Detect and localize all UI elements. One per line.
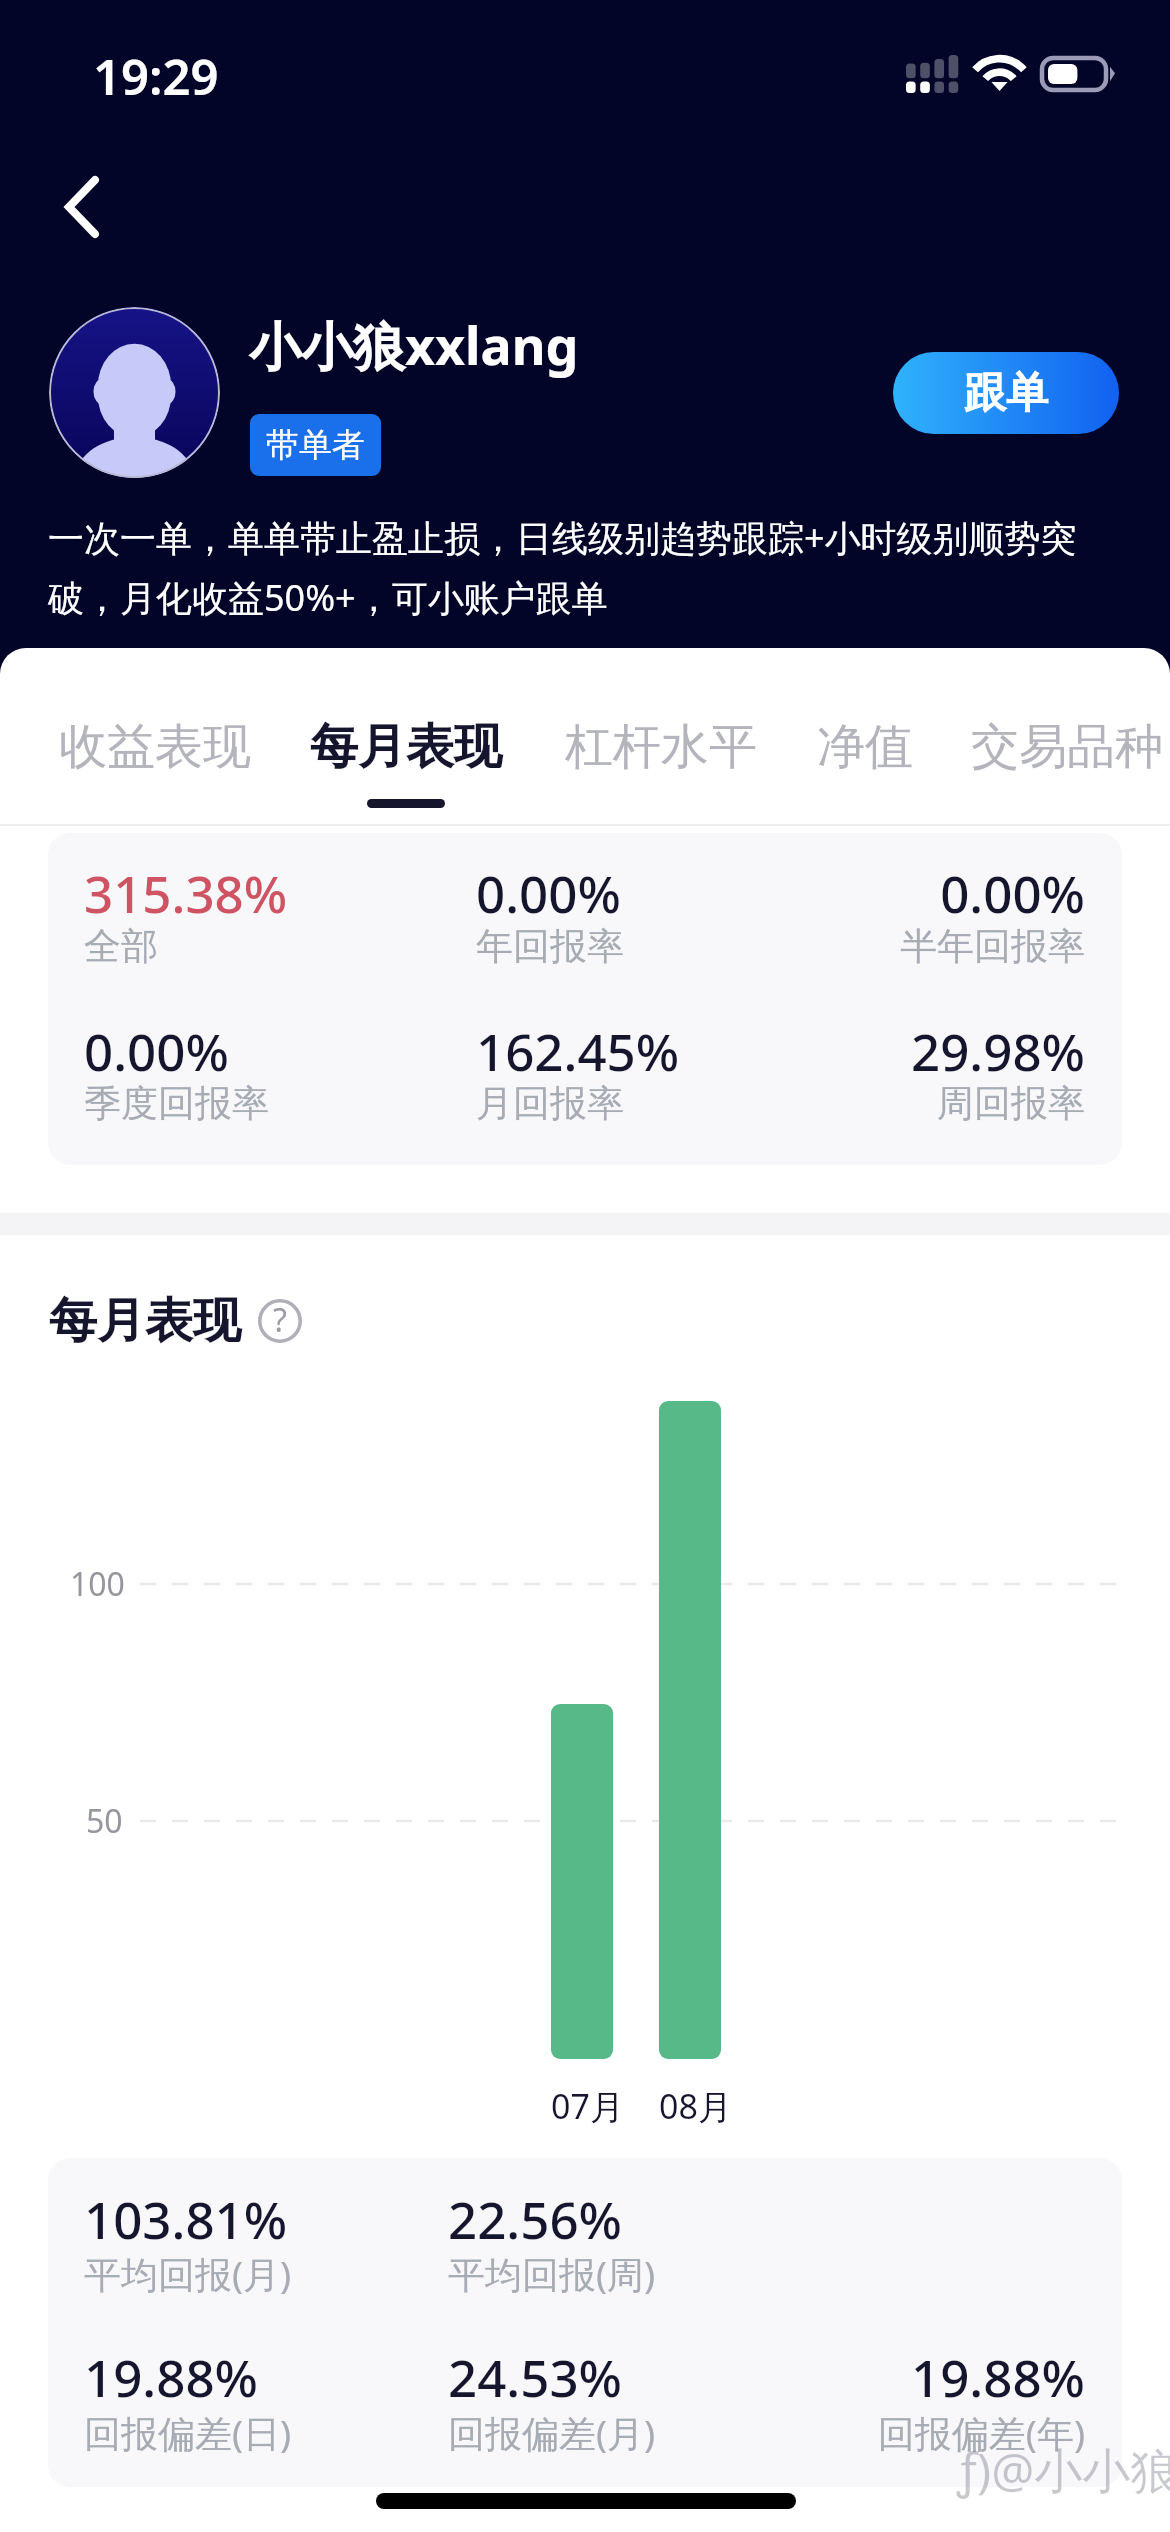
staticText: 50 [86, 1799, 123, 1843]
staticText: 月回报率 [476, 1080, 624, 1127]
staticText: 半年回报率 [0, 923, 1085, 970]
staticText: 0.00% [0, 858, 1085, 927]
staticText: 净值 [817, 717, 913, 777]
staticText: 0.00% [84, 1016, 229, 1085]
staticText: 162.45% [476, 1016, 680, 1085]
staticText: 回报偏差(日) [84, 2407, 292, 2458]
staticText: 季度回报率 [84, 1080, 269, 1127]
button[interactable]: 杠杆水平 [565, 717, 757, 777]
staticText: 一次一单，单单带止盈止损，日线级别趋势跟踪+小时级别顺势突破，月化收益50%+，… [48, 513, 1108, 621]
staticText: 交易品种 [971, 717, 1163, 777]
button[interactable]: 净值 [817, 717, 913, 777]
staticText: 08月 [659, 2083, 732, 2129]
staticText: 100 [70, 1562, 125, 1606]
staticText: 回报偏差(年) [0, 2407, 1085, 2458]
staticText: 平均回报(周) [448, 2248, 656, 2299]
staticText: 平均回报(月) [84, 2248, 292, 2299]
staticText: 19.88% [84, 2342, 259, 2411]
button[interactable]: 每月表现 [310, 717, 502, 808]
staticText: 收益表现 [59, 717, 251, 777]
staticText: 103.81% [84, 2184, 288, 2253]
staticText: 19.88% [0, 2342, 1085, 2411]
staticText: 0.00% [476, 858, 621, 927]
staticText: 跟单 [964, 367, 1048, 420]
staticText: 每月表现 [310, 717, 502, 777]
staticText: 19:29 [93, 43, 219, 110]
staticText: 24.53% [448, 2342, 623, 2411]
staticText: 小小狼xxlang [249, 309, 579, 380]
button[interactable]: Help [258, 1299, 302, 1343]
staticText: 22.56% [448, 2184, 623, 2253]
button[interactable]: 跟单 [893, 352, 1119, 434]
button[interactable]: 带单者 [250, 414, 381, 476]
staticText: ? [273, 1298, 287, 1342]
staticText: 年回报率 [476, 923, 624, 970]
button[interactable]: Back [22, 147, 142, 267]
button[interactable]: 收益表现 [59, 717, 251, 777]
staticText: 周回报率 [0, 1080, 1085, 1127]
staticText: 杠杆水平 [565, 717, 757, 777]
button[interactable]: 交易品种 [971, 717, 1163, 777]
staticText: 每月表现 [49, 1291, 241, 1351]
staticText: 回报偏差(月) [448, 2407, 656, 2458]
staticText: ƒ)@小小狼 [957, 2437, 1170, 2503]
staticText: 全部 [84, 923, 158, 970]
staticText: 29.98% [0, 1016, 1085, 1085]
staticText: 07月 [551, 2083, 624, 2129]
staticText: 带单者 [266, 424, 365, 466]
staticText: 315.38% [84, 858, 288, 927]
